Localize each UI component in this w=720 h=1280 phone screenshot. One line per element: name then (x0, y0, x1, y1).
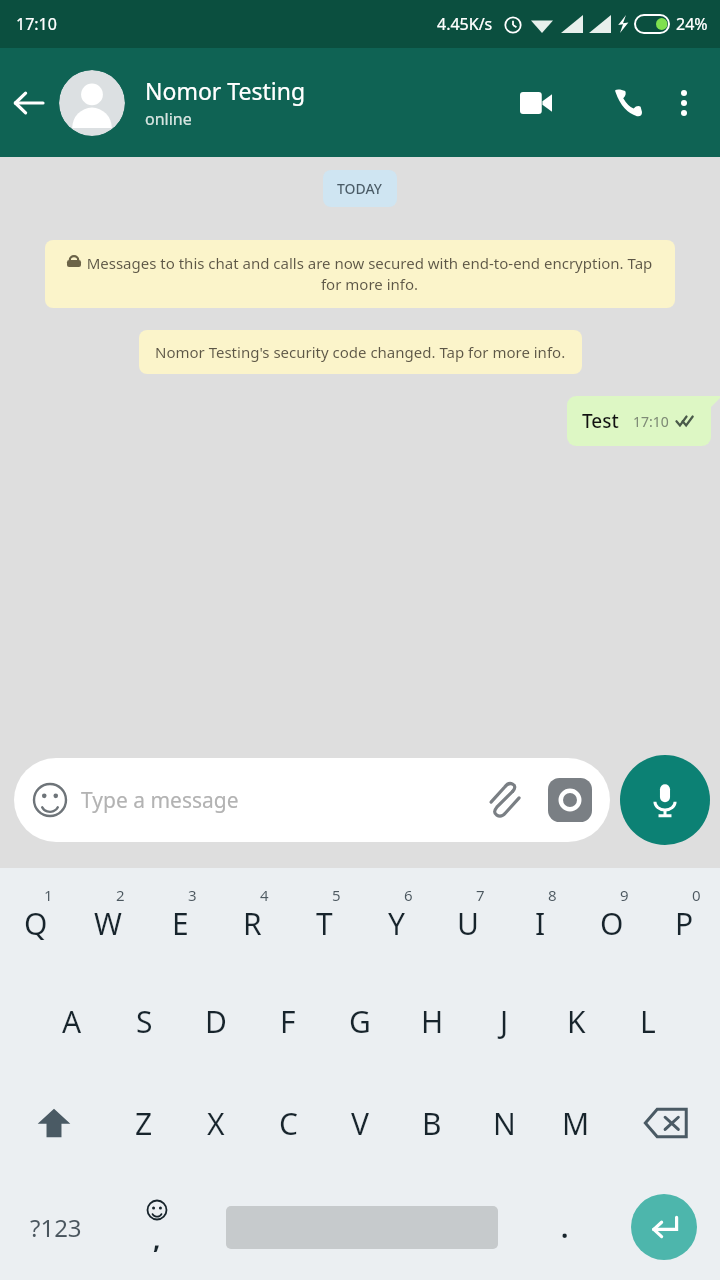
button[interactable]: Messages to this chat and calls are now … (45, 240, 675, 308)
staticText: 5 (332, 885, 341, 905)
button[interactable]: Voice call (600, 75, 656, 131)
staticText: W (94, 903, 122, 944)
button[interactable]: K (540, 970, 612, 1072)
staticText: Type a message (81, 786, 239, 815)
button[interactable]: Nomor Testing (145, 75, 508, 130)
other: Emoji (32, 782, 68, 818)
button[interactable]: 1 (0, 868, 72, 970)
button[interactable]: C (252, 1072, 324, 1174)
staticText: N (493, 1103, 516, 1144)
button[interactable]: G (324, 970, 396, 1072)
staticText: X (207, 1103, 225, 1144)
button[interactable]: Test (567, 396, 711, 446)
button[interactable]: Voice message (620, 755, 710, 845)
button[interactable]: 8 (504, 868, 576, 970)
staticText: F (280, 1001, 296, 1042)
button[interactable]: 4 (216, 868, 288, 970)
button[interactable]: 9 (576, 868, 648, 970)
button[interactable]: X (180, 1072, 252, 1174)
staticText: V (351, 1103, 369, 1144)
staticText: TODAY (337, 179, 383, 198)
staticText: Messages to this chat and calls are now … (86, 253, 653, 295)
button[interactable]: L (612, 970, 684, 1072)
staticText: I (535, 903, 546, 944)
button[interactable]: V (324, 1072, 396, 1174)
button[interactable]: Attach (486, 782, 522, 818)
button[interactable]: N (468, 1072, 540, 1174)
staticText: M (562, 1103, 590, 1144)
staticText: Z (135, 1103, 153, 1144)
staticText: 1 (44, 885, 53, 905)
staticText: 2 (116, 885, 125, 905)
button[interactable]: H (396, 970, 468, 1072)
staticText: Nomor Testing's security code changed. T… (155, 342, 566, 362)
button[interactable]: Emoji (14, 758, 610, 842)
staticText: O (600, 903, 624, 944)
staticText: . (561, 1210, 569, 1245)
staticText: C (279, 1103, 298, 1144)
staticText: U (457, 903, 479, 944)
button[interactable]: B (396, 1072, 468, 1174)
button[interactable]: 3 (144, 868, 216, 970)
button[interactable]: Z (108, 1072, 180, 1174)
button[interactable]: Backspace (612, 1072, 720, 1174)
button[interactable]: S (108, 970, 180, 1072)
staticText: 17:10 (633, 412, 669, 431)
staticText: S (136, 1001, 153, 1042)
button[interactable]: 7 (432, 868, 504, 970)
staticText: D (205, 1001, 227, 1042)
staticText: G (349, 1001, 371, 1042)
staticText: 24% (676, 13, 708, 35)
staticText: Nomor Testing (145, 75, 306, 106)
button[interactable]: 2 (72, 868, 144, 970)
button[interactable] (59, 70, 125, 136)
button[interactable]: Back (0, 75, 56, 131)
staticText: 9 (620, 885, 629, 905)
staticText: K (567, 1001, 586, 1042)
staticText: Q (24, 903, 48, 944)
button[interactable]: D (180, 970, 252, 1072)
staticText: 7 (476, 885, 485, 905)
button[interactable]: More options (656, 75, 712, 131)
button[interactable]: 0 (648, 868, 720, 970)
button[interactable]: Camera (548, 778, 592, 822)
staticText: 8 (548, 885, 557, 905)
staticText: E (172, 903, 189, 944)
staticText: R (243, 903, 262, 944)
button[interactable]: Enter (631, 1194, 697, 1260)
staticText: 0 (692, 885, 701, 905)
staticText: B (422, 1103, 442, 1144)
staticText: ?123 (30, 1211, 82, 1244)
staticText: Test (582, 408, 619, 434)
button[interactable]: Shift (0, 1072, 108, 1174)
button[interactable]: Emoji and comma (112, 1174, 202, 1280)
staticText: Y (388, 903, 405, 944)
staticText: online (145, 108, 192, 130)
staticText: 4 (260, 885, 269, 905)
button[interactable]: 6 (360, 868, 432, 970)
staticText: 4.45K/s (437, 13, 493, 35)
staticText: , (153, 1221, 161, 1256)
button[interactable]: F (252, 970, 324, 1072)
button[interactable]: J (468, 970, 540, 1072)
staticText: L (640, 1001, 656, 1042)
staticText: P (675, 903, 694, 944)
staticText: J (500, 1001, 509, 1042)
button[interactable]: M (540, 1072, 612, 1174)
button[interactable]: ?123 (0, 1174, 112, 1280)
button[interactable]: . (522, 1174, 608, 1280)
staticText: 6 (404, 885, 413, 905)
button[interactable]: TODAY (323, 170, 397, 207)
staticText: 17:10 (16, 13, 57, 35)
staticText: H (421, 1001, 444, 1042)
button[interactable]: 5 (288, 868, 360, 970)
staticText: A (62, 1001, 82, 1042)
staticText: T (316, 903, 333, 944)
staticText: 3 (188, 885, 197, 905)
button[interactable]: A (36, 970, 108, 1072)
button[interactable]: Video call (508, 75, 564, 131)
button[interactable]: Nomor Testing's security code changed. T… (139, 330, 582, 374)
